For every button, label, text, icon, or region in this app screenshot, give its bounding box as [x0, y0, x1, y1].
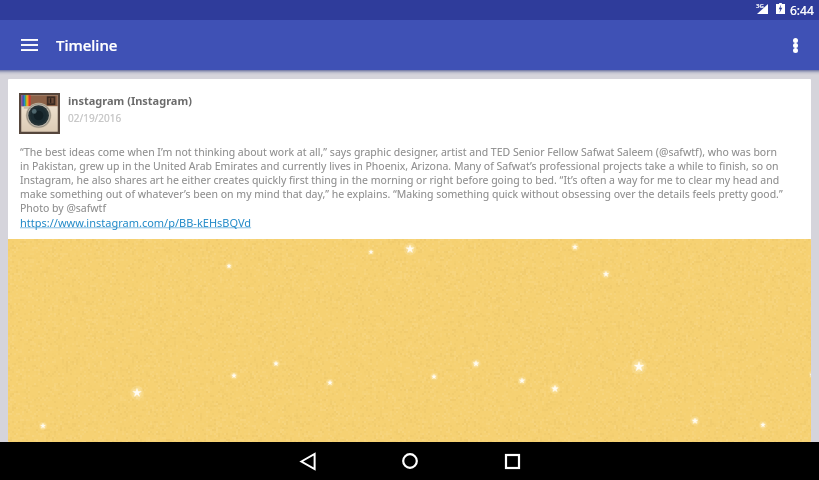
staticText: instagram (Instagram): [68, 93, 192, 108]
button[interactable]: Recent apps: [490, 442, 534, 480]
button[interactable]: Open navigation drawer: [13, 29, 45, 61]
button[interactable]: Back: [286, 442, 330, 480]
button[interactable]: More options: [777, 27, 813, 63]
button[interactable]: Home: [388, 442, 432, 480]
staticText: Instagram, he also shares art he either …: [20, 173, 780, 187]
staticText: in Pakistan, grew up in the United Arab …: [20, 159, 779, 173]
staticText: make something out of whatever’s been on…: [20, 187, 783, 201]
staticText: “The best ideas come when I’m not thinki…: [20, 145, 778, 159]
staticText: 6:44: [790, 2, 814, 18]
staticText: Photo by @safwtf: [20, 201, 107, 215]
staticText: 02/19/2016: [68, 111, 122, 125]
button[interactable]: https://www.instagram.com/p/BB-kEHsBQVd: [20, 215, 252, 230]
staticText: 3G: [756, 2, 764, 10]
button[interactable]: instagram (Instagram): [8, 79, 811, 442]
staticText: Timeline: [56, 35, 118, 55]
